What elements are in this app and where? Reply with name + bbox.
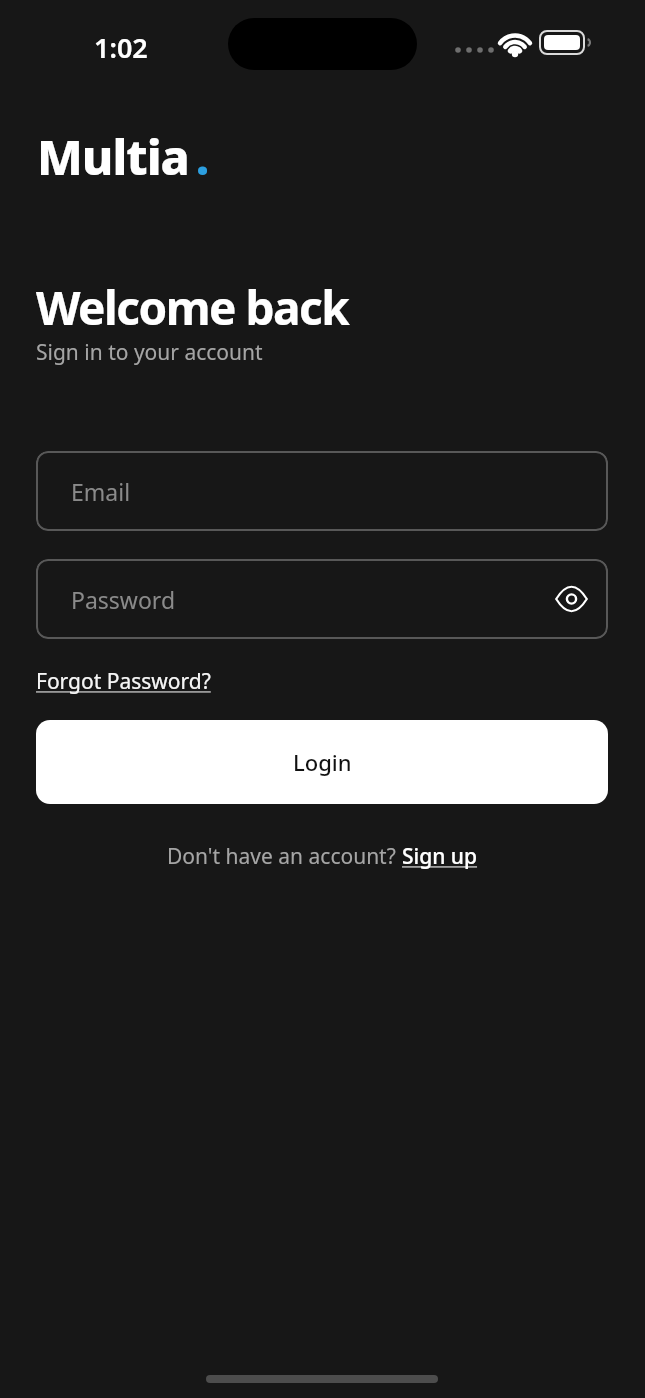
staticText: 1:02 <box>94 29 148 66</box>
staticText: Sign in to your account <box>36 338 263 367</box>
button[interactable]: Sign up <box>402 842 478 871</box>
staticText: Login <box>293 747 352 777</box>
staticText: Password <box>71 584 176 615</box>
staticText: Welcome back <box>36 276 349 339</box>
staticText: Forgot Password? <box>36 667 211 696</box>
staticText: Sign up <box>402 842 478 871</box>
staticText: Email <box>71 476 131 507</box>
button[interactable] <box>550 578 592 620</box>
button[interactable]: Password <box>36 559 608 639</box>
staticText: Multia . <box>37 124 209 189</box>
button[interactable]: Forgot Password? <box>36 667 211 696</box>
button[interactable]: Email <box>36 451 608 531</box>
button[interactable]: Login <box>36 720 608 804</box>
staticText: Don't have an account? <box>167 842 402 871</box>
